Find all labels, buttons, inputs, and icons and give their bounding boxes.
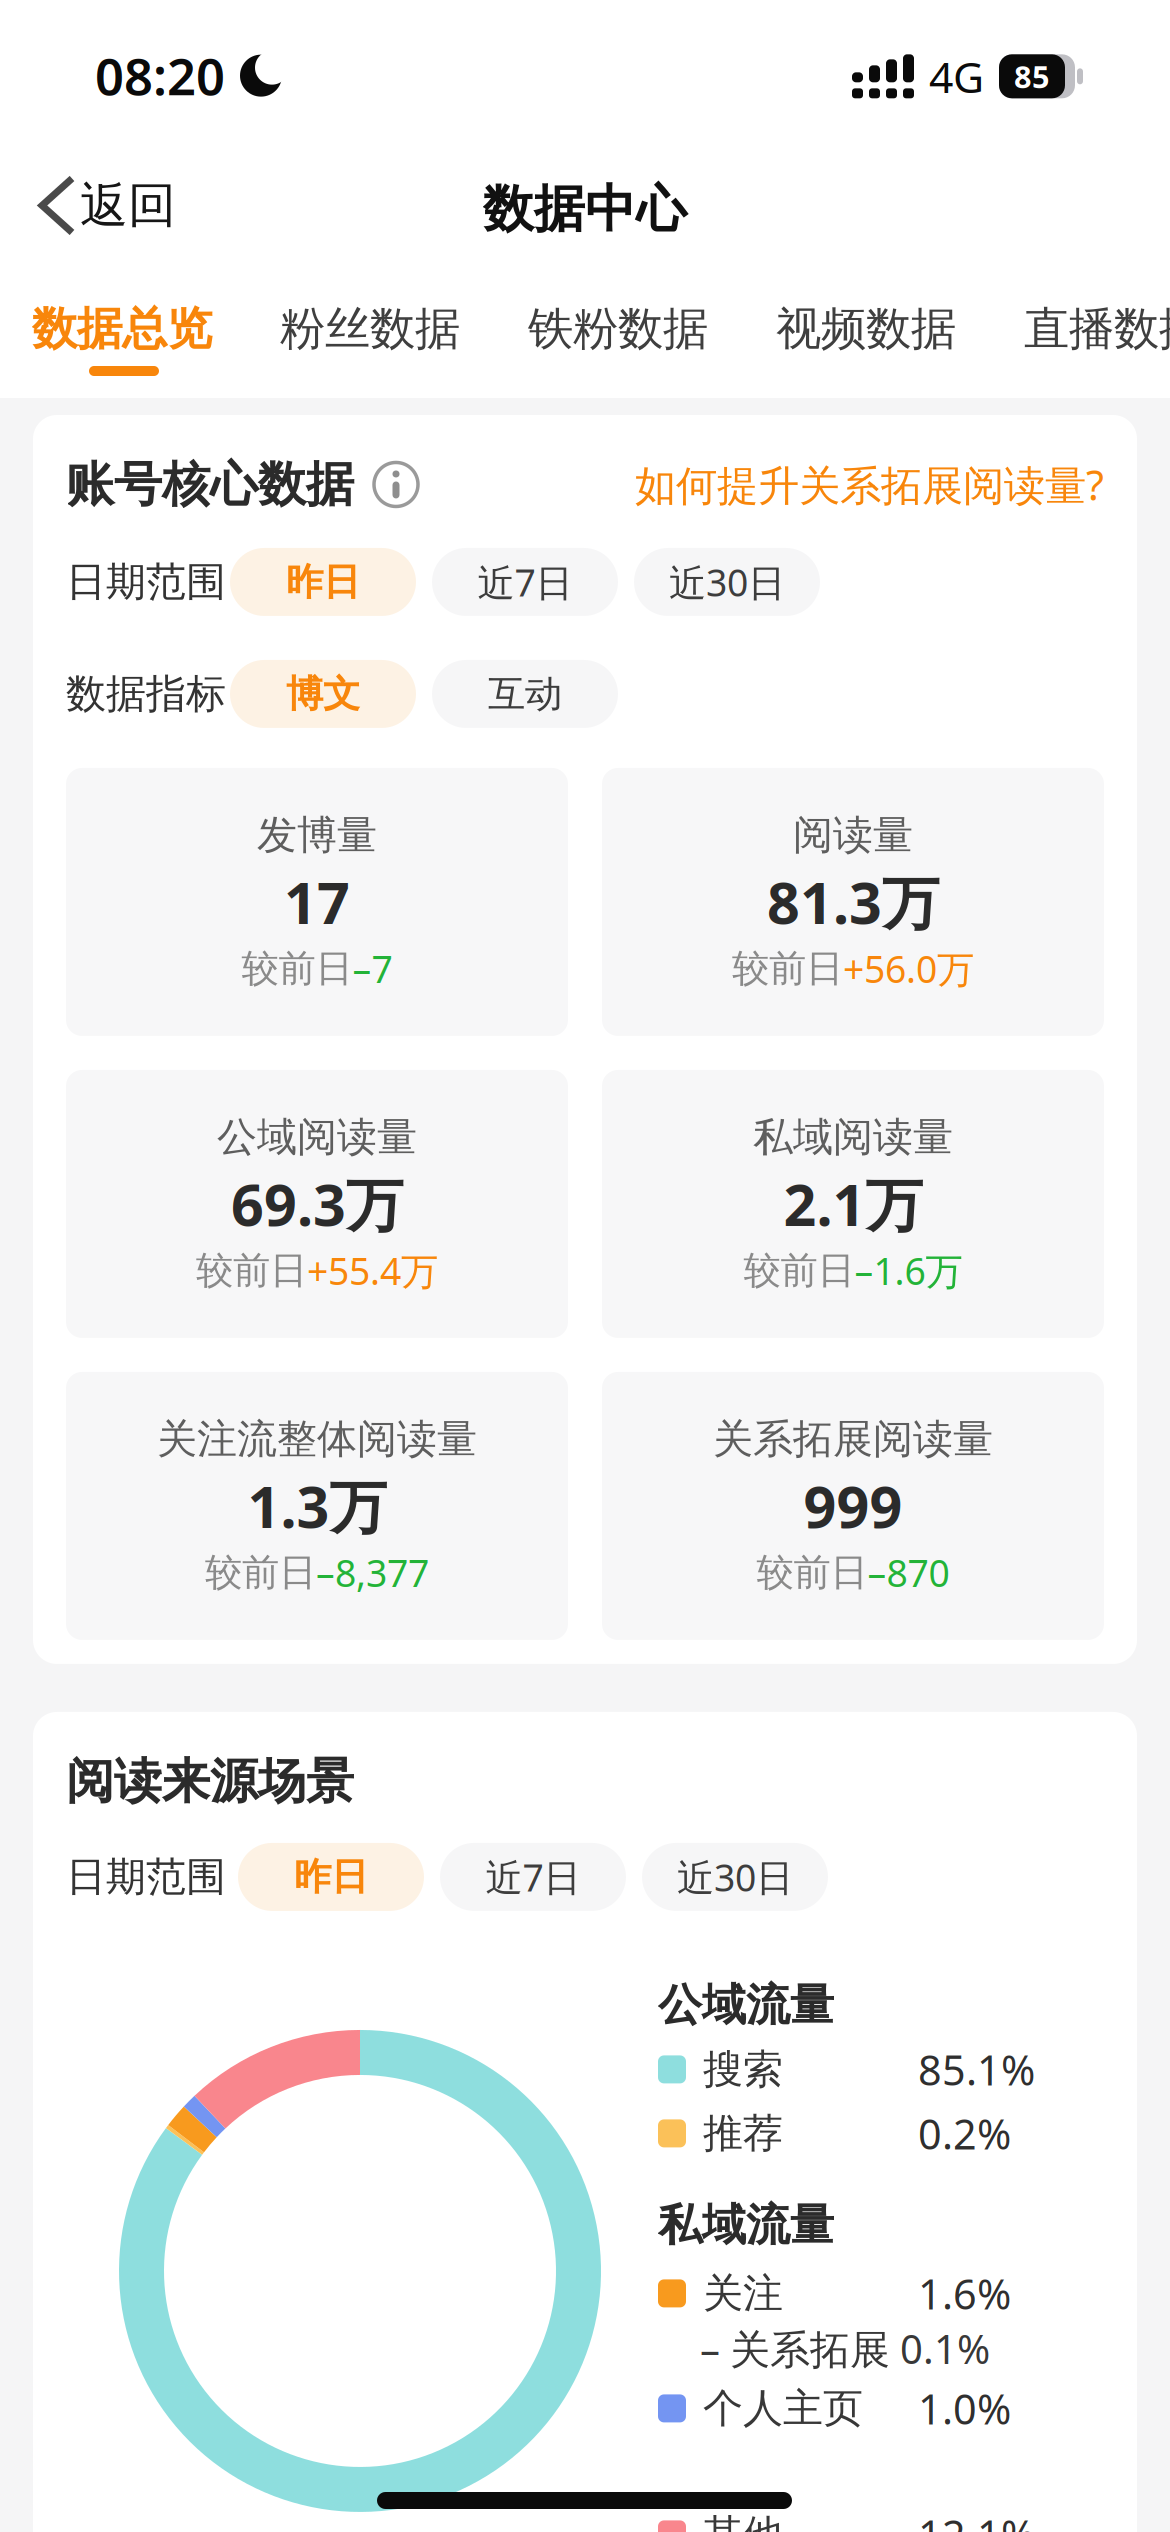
staticText: 12.1% [918,2507,1035,2532]
button[interactable]: 昨日 [230,548,416,616]
staticText: 如何提升关系拓展阅读量? [635,457,1104,512]
staticText: 关注 [703,2269,783,2318]
staticText: 关注流整体阅读量 [157,1414,477,1464]
staticText: 昨日 [294,1854,368,1900]
button[interactable]: 近30日 [634,548,820,616]
staticText: 4G [929,48,984,105]
button[interactable]: 博文 [230,660,416,728]
button[interactable]: 近30日 [642,1843,828,1911]
staticText: 博文 [286,671,360,717]
staticText: 公域阅读量 [217,1112,417,1162]
staticText: 较前日 [743,1248,854,1294]
staticText: 互动 [488,671,562,717]
staticText: 81.3万 [767,864,939,940]
staticText: 关系拓展阅读量 [713,1414,993,1464]
staticText: 1.3万 [247,1468,386,1544]
staticText: 999 [803,1468,902,1544]
staticText: –1.6万 [854,1246,962,1295]
staticText: +56.0万 [843,944,974,993]
button[interactable]: 如何提升关系拓展阅读量? [635,457,1104,512]
staticText: +55.4万 [307,1246,438,1295]
button[interactable]: 铁粉数据 [528,301,708,357]
button[interactable]: 粉丝数据 [280,301,460,357]
staticText: 数据总览 [32,301,212,357]
staticText: 发博量 [257,810,377,860]
button[interactable]: 直播数据 [1024,301,1170,357]
staticText: 账号核心数据 [66,455,354,514]
button[interactable]: 昨日 [238,1843,424,1911]
staticText: –8,377 [316,1548,429,1597]
staticText: 数据中心 [483,178,687,240]
staticText: 85.1% [918,2042,1035,2097]
staticText: 私域阅读量 [753,1112,953,1162]
staticText: 直播数据 [1024,301,1170,357]
button[interactable]: 说明 [372,460,420,508]
staticText: 数据指标 [66,669,226,718]
button[interactable]: 互动 [432,660,618,728]
staticText: –870 [867,1548,949,1597]
staticText: –7 [352,944,392,993]
staticText: 较前日 [732,946,843,992]
staticText: 较前日 [196,1248,307,1294]
staticText: 2.1万 [783,1166,922,1242]
staticText: 近30日 [677,1852,793,1902]
staticText: – 关系拓展 0.1% [700,2322,990,2375]
staticText: 17 [284,864,350,940]
staticText: 推荐 [703,2109,783,2158]
staticText: 返回 [80,176,176,235]
staticText: 铁粉数据 [528,301,708,357]
staticText: 较前日 [241,946,352,992]
button[interactable]: 数据总览 [32,301,212,357]
staticText: 个人主页 [703,2384,863,2433]
button[interactable]: 返回 [0,138,134,197]
button[interactable]: 视频数据 [776,301,956,357]
staticText: 私域流量 [658,2198,834,2252]
button[interactable]: 近7日 [432,548,618,616]
staticText: 69.3万 [231,1166,403,1242]
staticText: 1.0% [918,2381,1011,2436]
staticText: 阅读来源场景 [66,1752,354,1811]
staticText: 1.6% [918,2266,1011,2321]
staticText: 搜索 [703,2045,783,2094]
staticText: 0.2% [918,2106,1011,2161]
staticText: 08:20 [95,42,225,109]
staticText: 日期范围 [66,557,226,606]
staticText: 近7日 [477,557,572,607]
button[interactable]: 近7日 [440,1843,626,1911]
staticText: 视频数据 [776,301,956,357]
staticText: 粉丝数据 [280,301,460,357]
staticText: 较前日 [756,1550,867,1596]
staticText: 日期范围 [66,1852,226,1901]
staticText: 85 [1014,56,1050,97]
staticText: 昨日 [286,559,360,605]
staticText: 近7日 [485,1852,580,1902]
staticText: 其他 [703,2510,783,2532]
staticText: 近30日 [669,557,785,607]
staticText: 较前日 [205,1550,316,1596]
staticText: 公域流量 [658,1978,834,2032]
staticText: 阅读量 [793,810,913,860]
